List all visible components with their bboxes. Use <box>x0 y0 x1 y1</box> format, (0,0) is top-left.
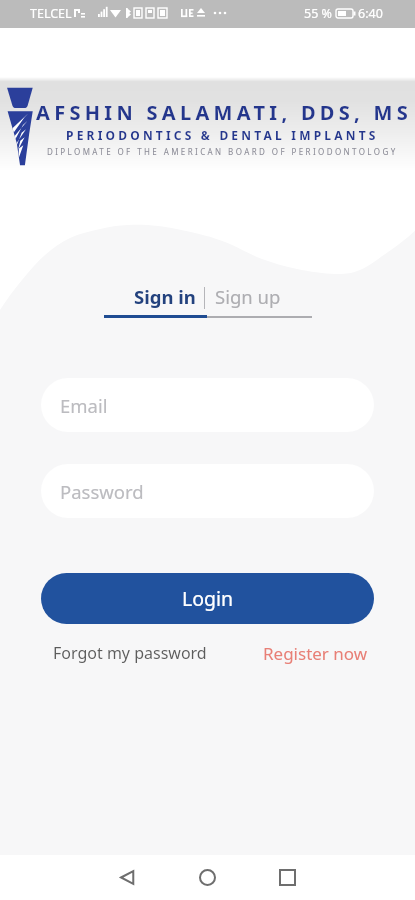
staticText: Password <box>60 479 144 504</box>
staticText: Sign up <box>215 284 281 309</box>
staticText: Login <box>182 585 234 612</box>
staticText: Email <box>60 393 108 418</box>
button[interactable]: Sign up <box>207 284 312 318</box>
button[interactable]: Login <box>41 573 374 624</box>
staticText: Register now <box>263 642 368 665</box>
staticText: Forgot my password <box>53 642 207 664</box>
staticText: PERIODONTICS & DENTAL IMPLANTS <box>66 127 379 143</box>
staticText: 6:40 <box>358 5 383 22</box>
staticText: Sign in <box>134 284 196 309</box>
staticText: DIPLOMATE OF THE AMERICAN BOARD OF PERIO… <box>47 146 398 157</box>
button[interactable]: Home <box>167 855 247 900</box>
staticText: 55 % <box>304 5 332 22</box>
button[interactable]: Password <box>41 464 374 518</box>
button[interactable]: Recents <box>247 855 327 900</box>
button[interactable]: Back <box>88 855 167 900</box>
button[interactable]: Forgot my password <box>53 642 207 664</box>
button[interactable]: Email <box>41 378 374 432</box>
button[interactable]: Sign in <box>104 284 207 318</box>
staticText: TELCEL <box>30 5 72 22</box>
button[interactable]: Register now <box>263 642 368 665</box>
staticText: AFSHIN SALAMATI, DDS, MS <box>36 99 413 126</box>
